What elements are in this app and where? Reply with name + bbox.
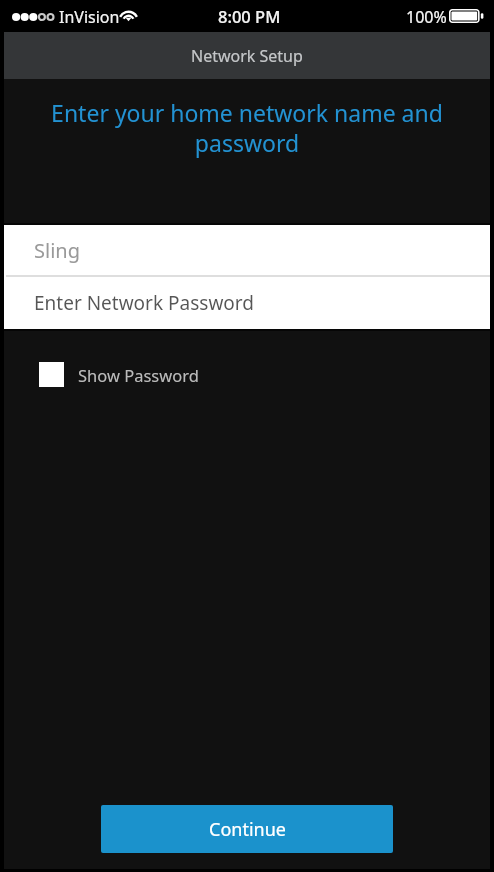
staticText: 8:00 PM <box>218 5 281 27</box>
other: Battery full <box>449 9 484 23</box>
staticText: InVision <box>59 6 120 28</box>
button[interactable]: Continue <box>101 805 393 853</box>
staticText: Sling <box>34 237 80 264</box>
button[interactable]: Sling <box>4 225 490 275</box>
staticText: Enter Network Password <box>34 290 254 316</box>
staticText: Show Password <box>78 364 199 386</box>
staticText: Network Setup <box>191 45 303 67</box>
other: Wi-Fi connected <box>119 6 138 21</box>
other: Signal strength <box>8 10 54 24</box>
button[interactable]: Show Password <box>39 362 199 387</box>
staticText: Enter your home network name and passwor… <box>48 97 446 158</box>
button[interactable]: Enter Network Password <box>4 277 490 329</box>
staticText: 100% <box>406 6 447 28</box>
staticText: Continue <box>209 817 286 842</box>
